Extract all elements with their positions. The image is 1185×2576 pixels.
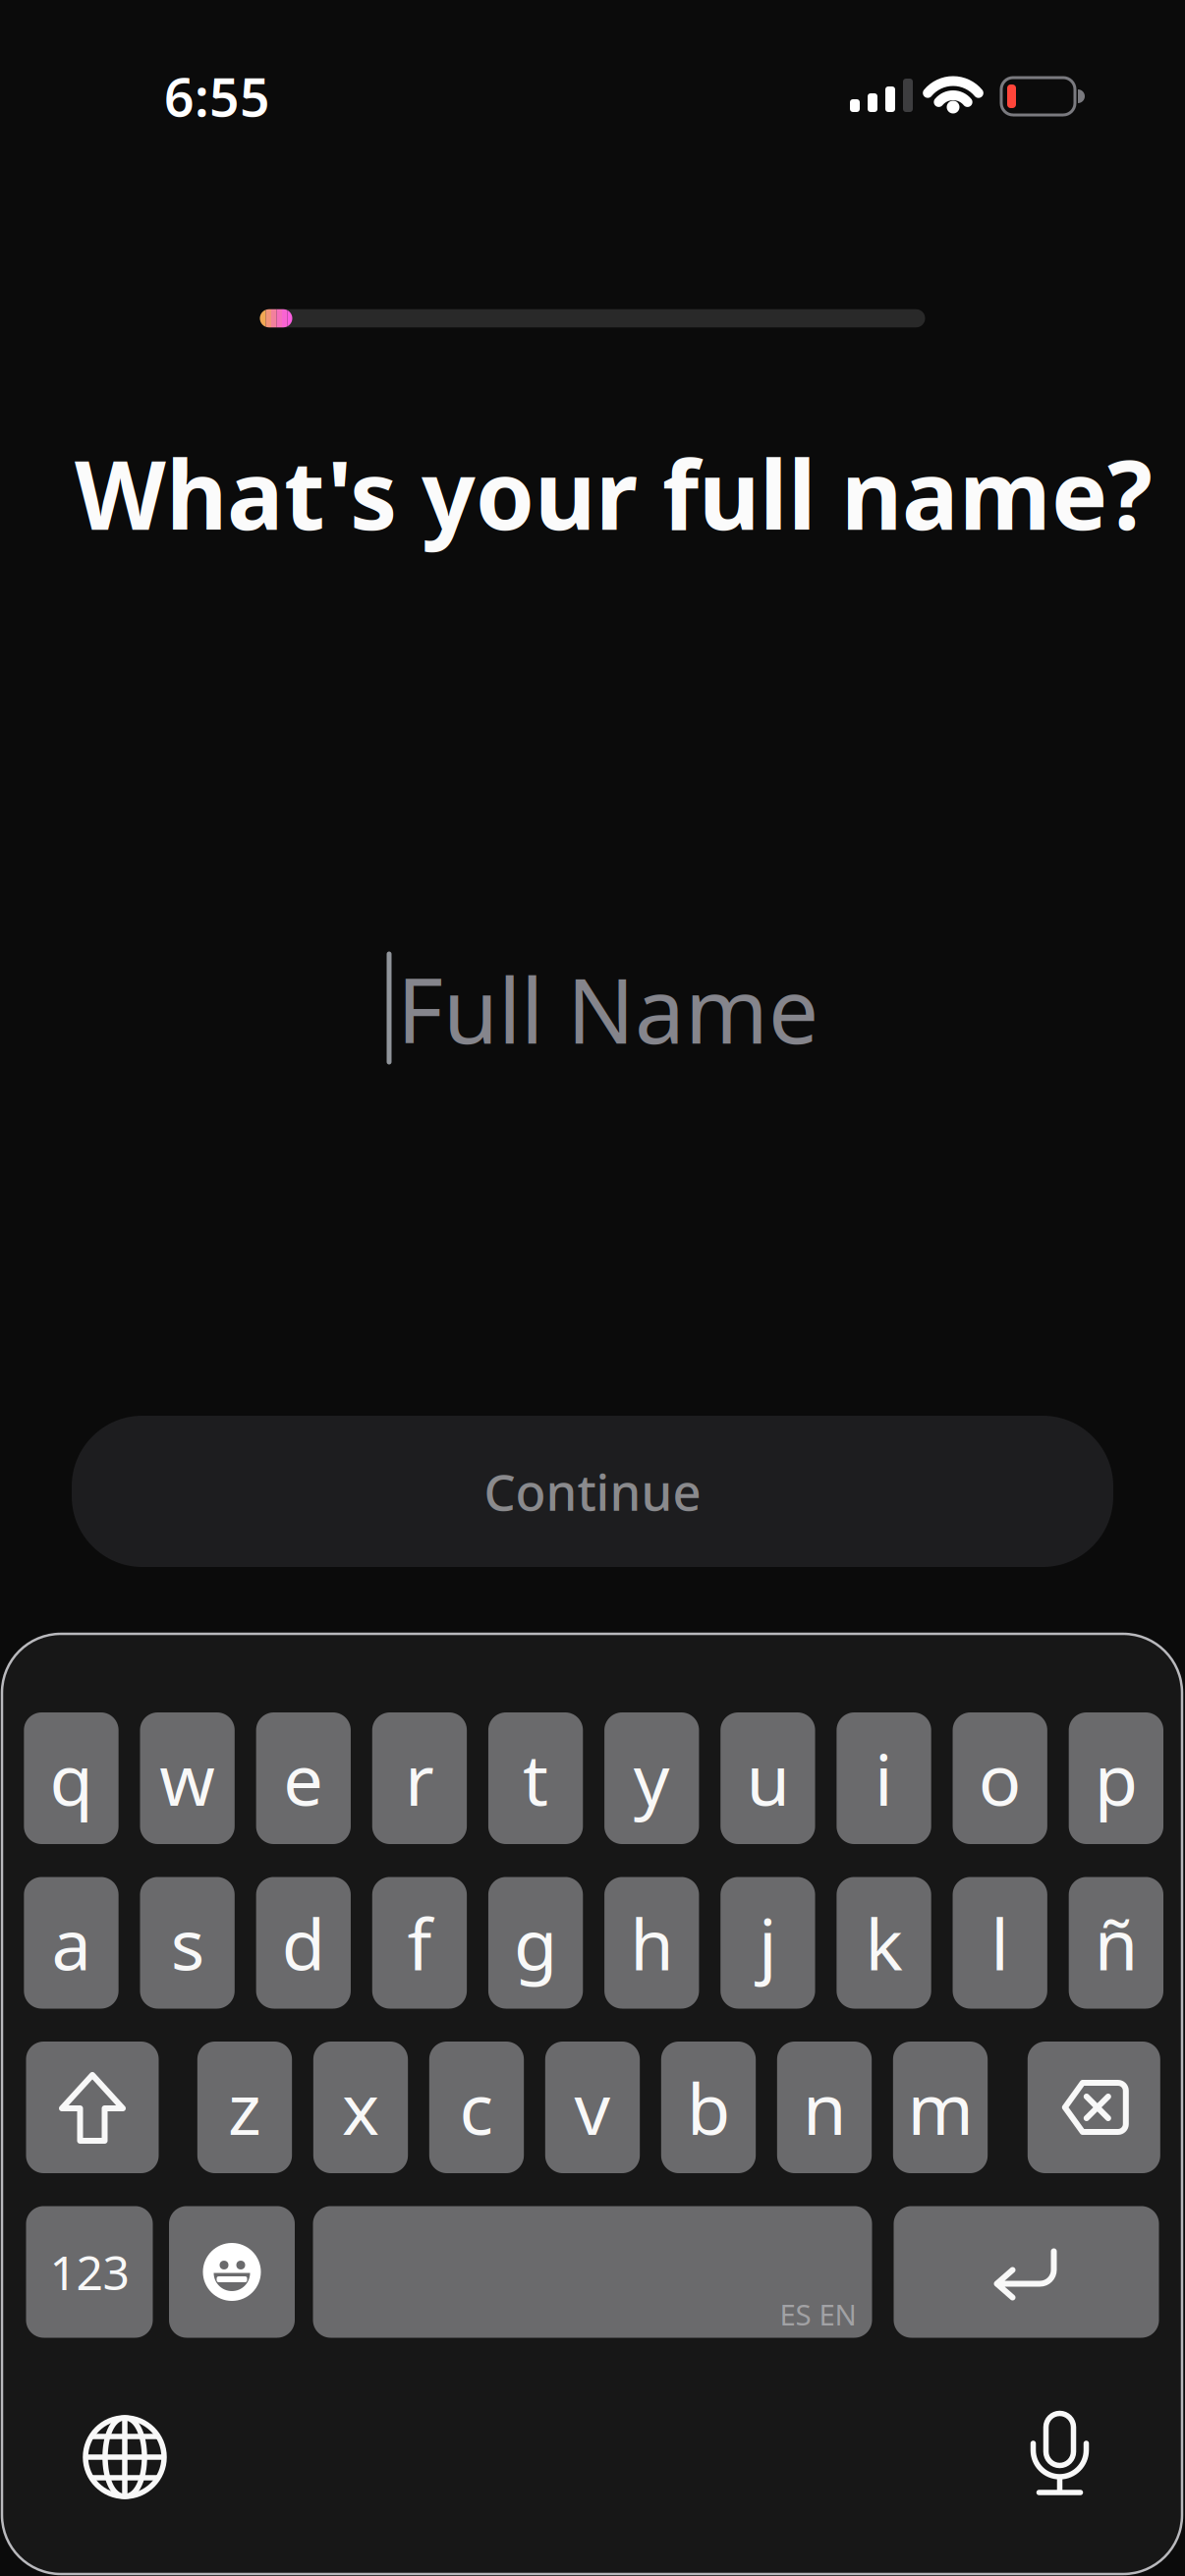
staticText: r <box>405 1731 434 1825</box>
button[interactable]: l <box>953 1877 1047 2009</box>
staticText: g <box>514 1896 557 1990</box>
staticText: t <box>523 1731 548 1825</box>
staticText: h <box>630 1896 673 1990</box>
staticText: u <box>746 1731 789 1825</box>
button[interactable]: d <box>256 1877 351 2009</box>
button[interactable]: r <box>372 1712 467 1844</box>
button[interactable]: u <box>721 1712 815 1844</box>
button[interactable]: Continue <box>72 1416 1113 1567</box>
staticText: d <box>282 1896 325 1990</box>
button[interactable]: j <box>721 1877 815 2009</box>
staticText: What's your full name? <box>75 431 1153 556</box>
button[interactable]: b <box>661 2042 756 2173</box>
staticText: Full Name <box>397 950 818 1068</box>
button[interactable]: Return <box>894 2206 1159 2338</box>
staticText: y <box>634 1731 670 1825</box>
staticText: m <box>907 2060 973 2154</box>
button[interactable]: k <box>837 1877 931 2009</box>
button[interactable]: z <box>197 2042 292 2173</box>
button[interactable]: c <box>429 2042 524 2173</box>
button[interactable]: Delete <box>1028 2042 1160 2173</box>
staticText: 123 <box>50 2241 129 2303</box>
staticText: 6:55 <box>164 62 270 131</box>
staticText: Continue <box>484 1458 701 1524</box>
button[interactable]: Shift <box>26 2042 159 2173</box>
button[interactable]: Space <box>313 2206 872 2338</box>
staticText: o <box>978 1731 1022 1825</box>
button[interactable]: Full Name <box>386 947 897 1069</box>
button[interactable]: v <box>545 2042 640 2173</box>
staticText: ES EN <box>780 2295 856 2333</box>
button[interactable]: y <box>604 1712 699 1844</box>
staticText: x <box>342 2060 379 2154</box>
button[interactable]: q <box>24 1712 119 1844</box>
button[interactable]: x <box>313 2042 408 2173</box>
staticText: k <box>865 1896 903 1990</box>
button[interactable]: h <box>604 1877 699 2009</box>
button[interactable]: p <box>1069 1712 1163 1844</box>
button[interactable]: e <box>256 1712 351 1844</box>
staticText: ñ <box>1095 1896 1138 1990</box>
button[interactable]: a <box>24 1877 119 2009</box>
staticText: n <box>803 2060 846 2154</box>
staticText: v <box>574 2060 611 2154</box>
staticText: l <box>991 1896 1009 1990</box>
staticText: b <box>687 2060 730 2154</box>
staticText: a <box>52 1896 91 1990</box>
button[interactable]: g <box>488 1877 583 2009</box>
staticText: j <box>758 1896 777 1990</box>
button[interactable]: o <box>953 1712 1047 1844</box>
button[interactable]: Dictation <box>1001 2395 1119 2513</box>
button[interactable]: ñ <box>1069 1877 1163 2009</box>
staticText: c <box>459 2060 494 2154</box>
button[interactable]: f <box>372 1877 467 2009</box>
staticText: w <box>159 1731 215 1825</box>
staticText: i <box>875 1731 893 1825</box>
button[interactable]: 123 <box>26 2206 153 2338</box>
button[interactable]: i <box>837 1712 931 1844</box>
button[interactable]: n <box>777 2042 872 2173</box>
button[interactable]: Emoji <box>169 2206 295 2338</box>
button[interactable]: Next keyboard <box>66 2398 184 2516</box>
button[interactable]: w <box>140 1712 235 1844</box>
staticText: z <box>228 2060 261 2154</box>
staticText: f <box>407 1896 432 1990</box>
button[interactable]: s <box>140 1877 235 2009</box>
staticText: e <box>283 1731 324 1825</box>
staticText: q <box>50 1731 93 1825</box>
staticText: s <box>171 1896 204 1990</box>
button[interactable]: t <box>488 1712 583 1844</box>
staticText: p <box>1095 1731 1138 1825</box>
button[interactable]: m <box>893 2042 988 2173</box>
